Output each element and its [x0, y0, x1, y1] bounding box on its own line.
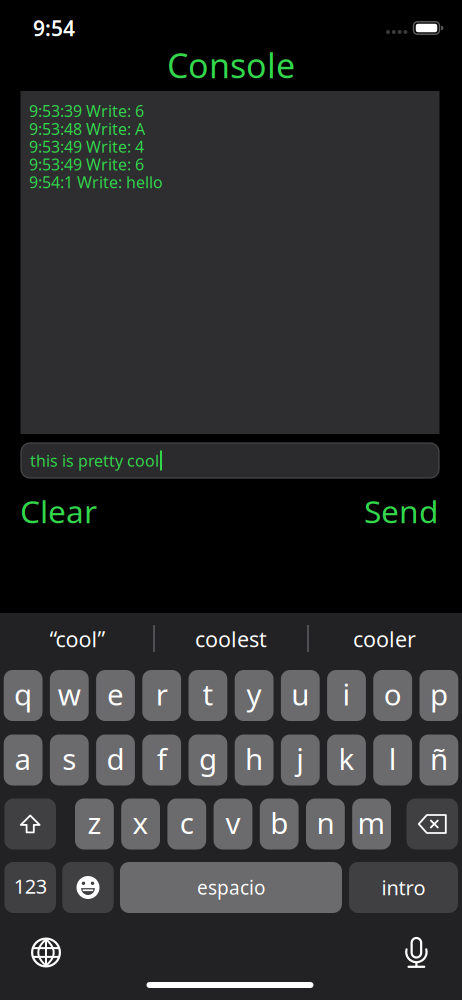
button[interactable]: Dictation	[403, 937, 429, 968]
staticText: j	[296, 738, 304, 779]
button[interactable]: y	[235, 670, 273, 721]
staticText: t	[202, 674, 213, 714]
button[interactable]: r	[142, 670, 181, 721]
staticText: p	[430, 674, 448, 714]
staticText: q	[14, 674, 32, 714]
button[interactable]: Shift	[4, 798, 56, 849]
button[interactable]: a	[4, 734, 42, 785]
staticText: 9:54	[33, 14, 75, 42]
staticText: this is pretty cool	[30, 450, 159, 471]
staticText: 9:53:39 Write: 6	[29, 100, 144, 122]
button[interactable]: z	[75, 798, 114, 849]
staticText: 123	[14, 872, 47, 900]
button[interactable]: q	[4, 670, 42, 721]
button[interactable]: v	[214, 798, 252, 849]
button[interactable]: Message input	[21, 443, 439, 478]
button[interactable]: c	[167, 798, 206, 849]
button[interactable]: k	[327, 734, 366, 785]
staticText: y	[247, 674, 262, 714]
staticText: Send	[364, 489, 438, 533]
button[interactable]: w	[50, 670, 89, 721]
button[interactable]: p	[419, 670, 458, 721]
button[interactable]: h	[235, 734, 273, 785]
staticText: g	[199, 738, 217, 779]
staticText: v	[225, 802, 240, 843]
staticText: h	[245, 738, 263, 779]
staticText: a	[15, 738, 32, 779]
staticText: u	[291, 674, 309, 714]
staticText: 9:54:1 Write: hello	[29, 171, 163, 193]
staticText: e	[107, 674, 124, 714]
staticText: Console	[167, 42, 295, 88]
button[interactable]: Delete	[407, 798, 458, 849]
button[interactable]: ñ	[419, 734, 458, 785]
staticText: intro	[381, 874, 425, 901]
button[interactable]: m	[352, 798, 391, 849]
button[interactable]: x	[121, 798, 160, 849]
staticText: 9:53:49 Write: 4	[29, 136, 144, 157]
staticText: n	[316, 802, 334, 843]
staticText: r	[156, 674, 168, 714]
staticText: o	[384, 674, 402, 714]
staticText: m	[358, 802, 386, 843]
staticText: c	[180, 802, 194, 843]
staticText: w	[58, 674, 81, 714]
staticText: f	[157, 738, 167, 779]
staticText: d	[106, 738, 124, 779]
staticText: b	[270, 802, 288, 843]
button[interactable]: e	[96, 670, 135, 721]
staticText: ñ	[430, 738, 448, 779]
staticText: l	[389, 738, 397, 779]
button[interactable]: coolest	[156, 612, 306, 666]
button[interactable]: n	[306, 798, 345, 849]
button[interactable]: d	[96, 734, 135, 785]
staticText: “cool”	[49, 624, 105, 654]
button[interactable]: j	[281, 734, 320, 785]
staticText: coolest	[195, 624, 267, 654]
button[interactable]: intro	[349, 862, 458, 913]
staticText: cooler	[353, 624, 416, 654]
button[interactable]: o	[373, 670, 412, 721]
button[interactable]: Numbers	[4, 862, 56, 913]
button[interactable]: s	[50, 734, 89, 785]
button[interactable]: f	[142, 734, 181, 785]
staticText: 9:53:49 Write: 6	[29, 153, 144, 175]
button[interactable]: “cool”	[2, 612, 152, 666]
button[interactable]: Clear	[20, 489, 97, 533]
button[interactable]: Send	[364, 489, 438, 533]
staticText: x	[133, 802, 149, 843]
staticText: s	[62, 738, 76, 779]
button[interactable]: espacio	[120, 862, 342, 913]
button[interactable]: Emoji	[62, 862, 114, 913]
button[interactable]: g	[188, 734, 227, 785]
staticText: Clear	[20, 489, 97, 533]
button[interactable]: Next keyboard	[31, 937, 61, 967]
button[interactable]: cooler	[309, 612, 459, 666]
button[interactable]: l	[373, 734, 412, 785]
staticText: 9:53:48 Write: A	[29, 118, 145, 140]
button[interactable]: t	[188, 670, 227, 721]
button[interactable]: i	[327, 670, 366, 721]
button[interactable]: b	[260, 798, 299, 849]
staticText: espacio	[197, 875, 265, 900]
staticText: k	[338, 738, 354, 779]
staticText: z	[87, 802, 101, 843]
staticText: i	[342, 674, 350, 714]
button[interactable]: u	[281, 670, 320, 721]
